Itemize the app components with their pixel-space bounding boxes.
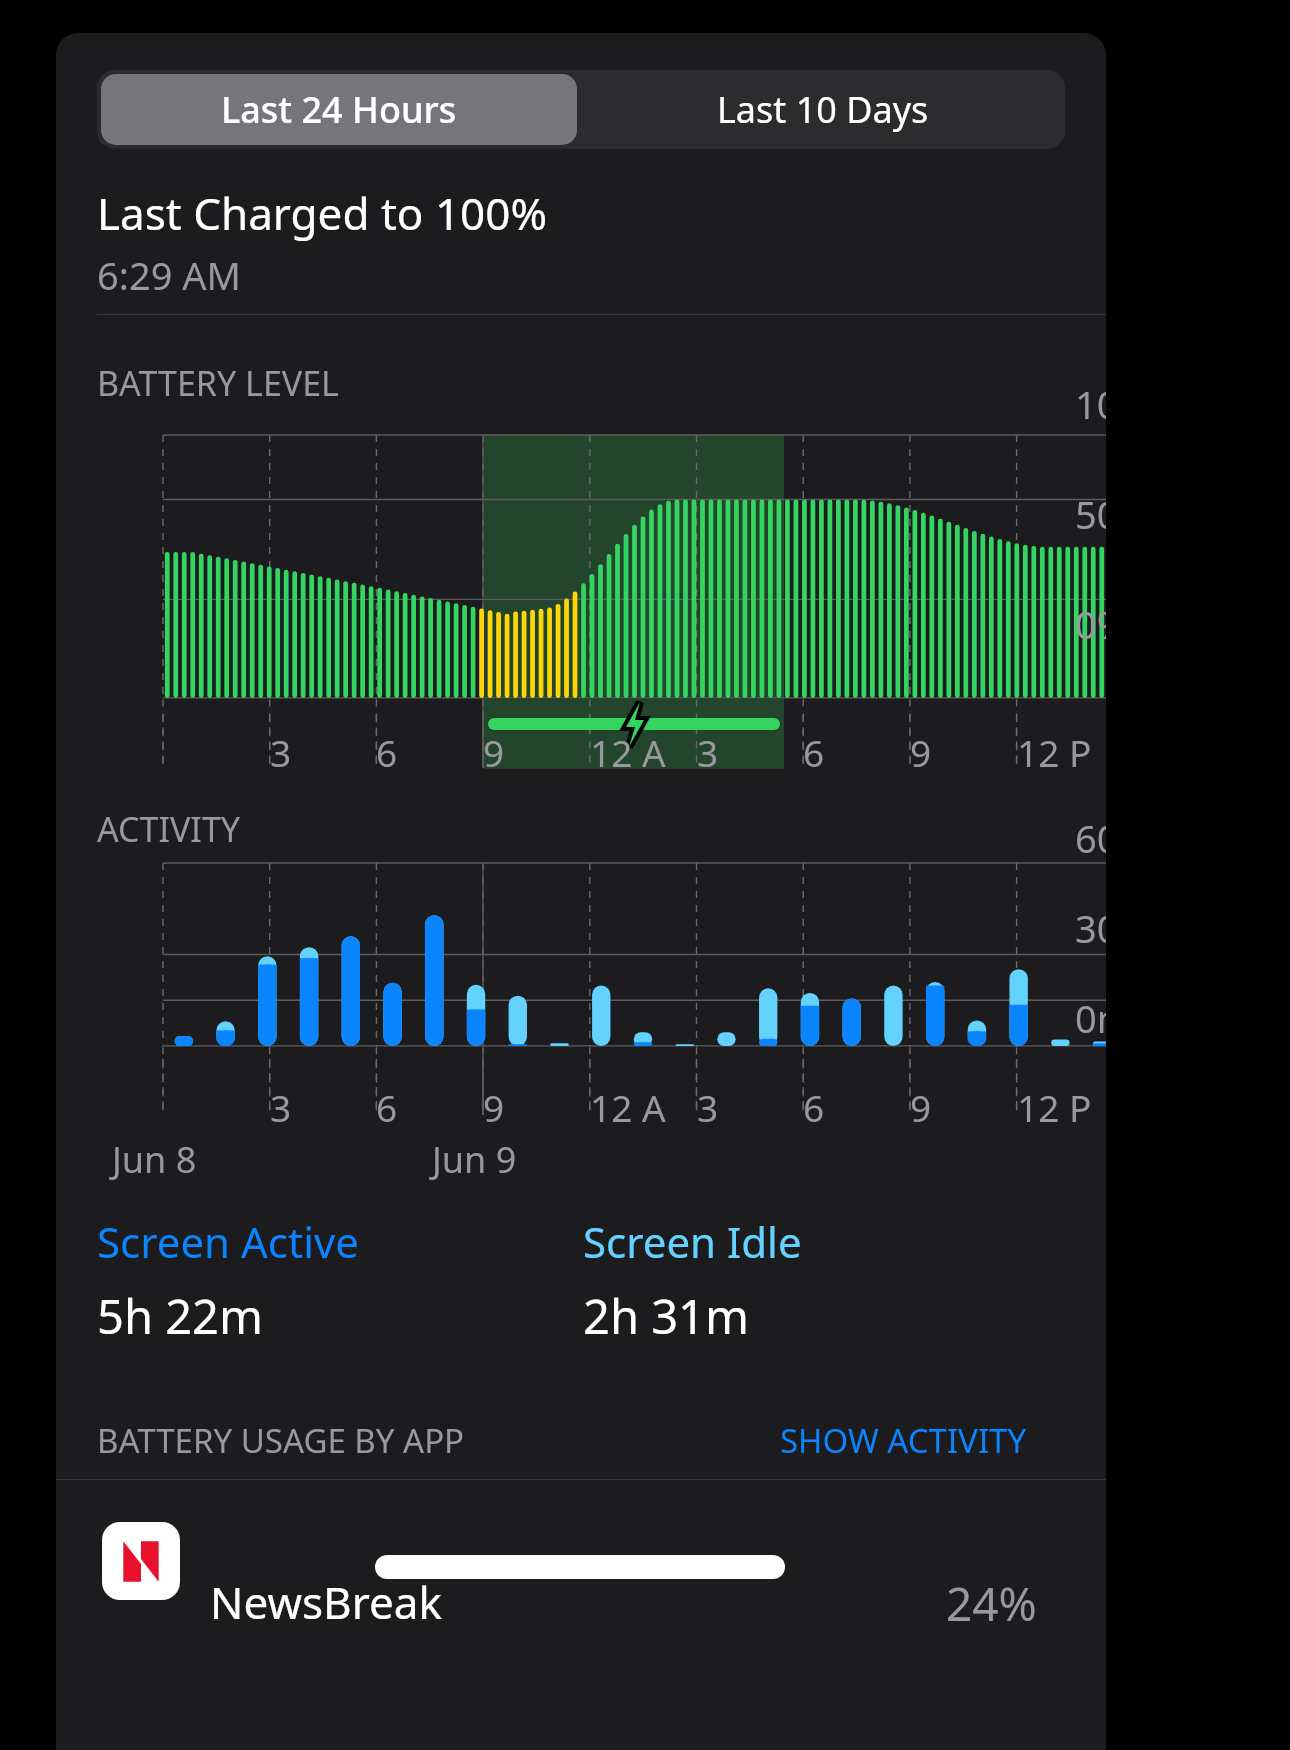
staticText: 3 bbox=[697, 1082, 719, 1132]
staticText: 9 bbox=[910, 1082, 932, 1132]
staticText: 12 P bbox=[1017, 727, 1092, 777]
staticText: NewsBreak bbox=[210, 1572, 442, 1632]
button[interactable]: Screen Active bbox=[97, 1213, 577, 1348]
staticText: 60m bbox=[1075, 812, 1106, 864]
staticText: 0% bbox=[1075, 598, 1106, 650]
staticText: BATTERY LEVEL bbox=[97, 360, 339, 406]
staticText: 12 P bbox=[1017, 1082, 1092, 1132]
staticText: Jun 8 bbox=[112, 1135, 197, 1184]
staticText: SHOW ACTIVITY bbox=[780, 1418, 1027, 1463]
staticText: 9 bbox=[483, 727, 505, 777]
staticText: 6 bbox=[803, 1082, 825, 1132]
staticText: 6 bbox=[376, 727, 398, 777]
staticText: 9 bbox=[483, 1082, 505, 1132]
staticText: Screen Idle bbox=[583, 1213, 802, 1270]
staticText: 12 A bbox=[590, 1082, 666, 1132]
staticText: Last Charged to 100% bbox=[97, 183, 547, 243]
staticText: ACTIVITY bbox=[97, 806, 241, 852]
staticText: 3 bbox=[697, 727, 719, 777]
staticText: Last 10 Days bbox=[717, 85, 929, 134]
staticText: Last 24 Hours bbox=[221, 85, 457, 134]
button[interactable]: Last 24 Hours bbox=[101, 74, 577, 145]
button[interactable]: Last 10 Days bbox=[581, 70, 1065, 149]
staticText: 24% bbox=[946, 1572, 1037, 1635]
staticText: BATTERY USAGE BY APP bbox=[97, 1418, 465, 1463]
staticText: 5h 22m bbox=[97, 1284, 263, 1348]
staticText: 3 bbox=[270, 1082, 292, 1132]
button[interactable]: SHOW ACTIVITY bbox=[780, 1418, 1027, 1463]
staticText: 9 bbox=[910, 727, 932, 777]
staticText: 3 bbox=[270, 727, 292, 777]
staticText: 12 A bbox=[590, 727, 666, 777]
staticText: 0m bbox=[1075, 992, 1106, 1044]
staticText: 2h 31m bbox=[583, 1284, 749, 1348]
staticText: 100% bbox=[1075, 378, 1106, 430]
button[interactable]: Screen Idle bbox=[583, 1213, 983, 1348]
staticText: 6 bbox=[376, 1082, 398, 1132]
staticText: 6 bbox=[803, 727, 825, 777]
staticText: Jun 9 bbox=[432, 1135, 517, 1184]
staticText: 30m bbox=[1075, 902, 1106, 954]
button[interactable]: NewsBreak bbox=[56, 1480, 1106, 1630]
staticText: Screen Active bbox=[97, 1213, 359, 1270]
staticText: 50% bbox=[1075, 488, 1106, 540]
staticText: 6:29 AM bbox=[97, 249, 242, 301]
